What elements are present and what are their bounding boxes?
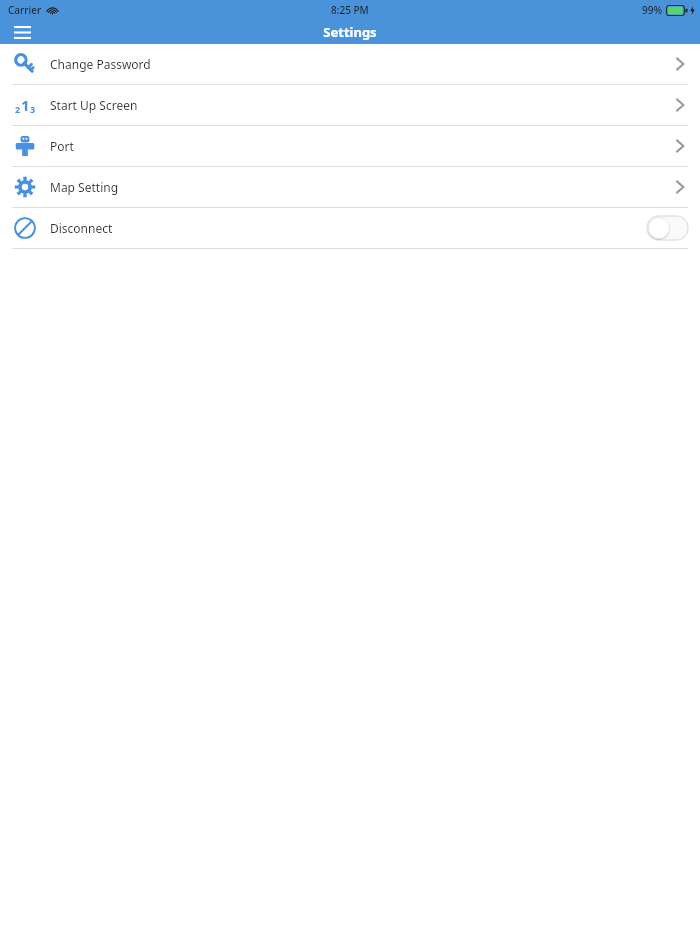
staticText: 1 xyxy=(21,95,30,115)
staticText: 2 xyxy=(15,103,21,115)
staticText: 8:25 PM xyxy=(331,3,369,17)
staticText: 99% xyxy=(642,3,662,17)
staticText: Carrier xyxy=(8,3,42,17)
button[interactable]: Disconnect toggle xyxy=(647,216,688,240)
button[interactable]: Menu xyxy=(8,20,36,44)
staticText: Disconnect xyxy=(50,220,647,236)
staticText: Port xyxy=(50,138,660,154)
staticText: Map Setting xyxy=(50,179,660,195)
staticText: 3 xyxy=(30,103,36,115)
button[interactable]: Disconnect xyxy=(0,208,700,248)
button[interactable]: 2 xyxy=(0,85,700,125)
staticText: Change Password xyxy=(50,56,660,72)
button[interactable]: Map Setting xyxy=(0,167,700,207)
staticText: Start Up Screen xyxy=(50,97,660,113)
button[interactable]: Change Password xyxy=(0,44,700,84)
button[interactable]: Port xyxy=(0,126,700,166)
staticText: Settings xyxy=(323,23,377,41)
